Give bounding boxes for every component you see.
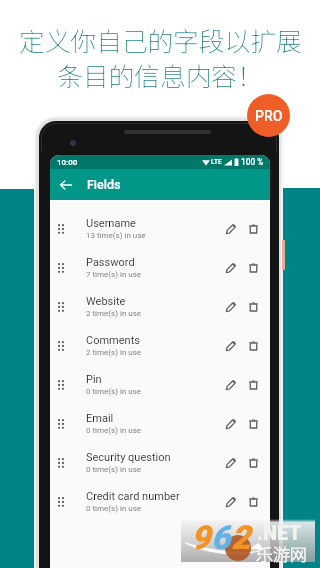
button[interactable]: Back [50, 169, 81, 200]
staticText: .NET [257, 521, 302, 544]
staticText: 0 time(s) in use [86, 426, 142, 435]
staticText: 10:00 [57, 158, 78, 167]
staticText: 100 % [241, 157, 264, 167]
staticText: 0 time(s) in use [86, 504, 142, 513]
staticText: Email [86, 412, 114, 425]
button[interactable]: Delete [240, 365, 266, 404]
button[interactable]: PRO [247, 94, 290, 137]
button[interactable]: Delete [240, 443, 266, 482]
button[interactable]: Edit [218, 404, 244, 443]
staticText: Comments [86, 334, 140, 347]
button[interactable]: Credit card number [50, 482, 270, 521]
button[interactable]: Delete [240, 326, 266, 365]
staticText: 定义你自己的字段以扩展 [19, 21, 302, 58]
staticText: 9 [191, 518, 211, 557]
staticText: 0 time(s) in use [86, 465, 142, 474]
staticText: 7 time(s) in use [86, 270, 142, 279]
staticText: PRO [255, 108, 283, 124]
staticText: LTE [211, 158, 222, 166]
staticText: Username [86, 217, 136, 230]
button[interactable]: Delete [240, 482, 266, 521]
staticText: Pin [86, 373, 102, 386]
button[interactable]: Pin [50, 365, 270, 404]
button[interactable]: Email [50, 404, 270, 443]
button[interactable]: Security question [50, 443, 270, 482]
staticText: Credit card number [86, 490, 180, 503]
staticText: Security question [86, 451, 171, 464]
staticText: Fields [87, 177, 121, 192]
staticText: 2 time(s) in use [86, 309, 142, 318]
staticText: 2 [231, 518, 251, 557]
button[interactable]: Edit [218, 326, 244, 365]
button[interactable]: Delete [240, 209, 266, 248]
button[interactable]: Password [50, 248, 270, 287]
button[interactable]: Edit [218, 209, 244, 248]
button[interactable]: Website [50, 287, 270, 326]
button[interactable]: Edit [218, 365, 244, 404]
staticText: 6 [211, 518, 231, 557]
button[interactable]: Delete [240, 404, 266, 443]
staticText: 2 time(s) in use [86, 348, 142, 357]
button[interactable]: Edit [218, 248, 244, 287]
button[interactable]: Edit [218, 443, 244, 482]
button[interactable]: Edit [218, 287, 244, 326]
staticText: 0 time(s) in use [86, 387, 142, 396]
staticText: 条目的信息内容！ [57, 56, 263, 93]
button[interactable]: Comments [50, 326, 270, 365]
staticText: 13 time(s) in use [86, 231, 146, 240]
staticText: Password [86, 256, 135, 269]
button[interactable]: Delete [240, 248, 266, 287]
button[interactable]: Username [50, 209, 270, 248]
staticText: 乐游网 [256, 541, 307, 566]
button[interactable]: Delete [240, 287, 266, 326]
button[interactable]: Edit [218, 482, 244, 521]
staticText: Website [86, 295, 126, 308]
